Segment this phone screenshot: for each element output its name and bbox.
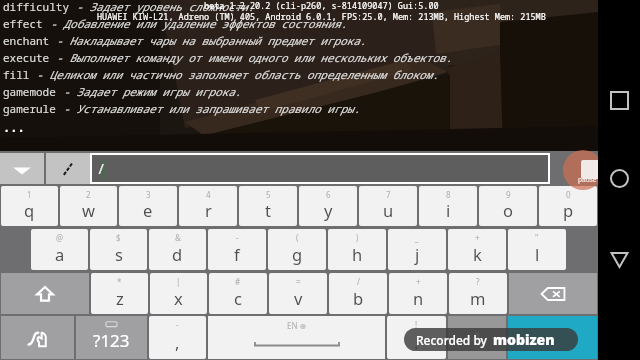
button[interactable]: 3 — [119, 186, 177, 226]
button[interactable]: 1 — [1, 186, 58, 226]
button[interactable]: & — [149, 229, 206, 270]
staticText: gamemode — [3, 84, 63, 99]
button[interactable]: Hide suggestions — [0, 153, 44, 184]
staticText: f — [234, 243, 240, 265]
staticText: k — [473, 243, 482, 265]
button[interactable]: Pause game — [563, 150, 603, 190]
button[interactable]: - — [208, 229, 266, 270]
button[interactable]: 0 — [539, 186, 597, 226]
staticText: v — [294, 287, 303, 309]
button[interactable]: Space — [208, 316, 385, 359]
staticText: 7 — [386, 189, 391, 200]
staticText: / — [357, 276, 360, 287]
staticText: Recorded by — [416, 332, 487, 348]
button[interactable]: Enter — [508, 316, 597, 359]
button[interactable]: + — [448, 229, 506, 270]
button[interactable]: $ — [90, 229, 147, 270]
staticText: @ — [56, 232, 64, 243]
button[interactable]: * — [91, 273, 148, 314]
button[interactable]: Emoji and symbols — [1, 316, 74, 359]
button[interactable]: Back — [602, 242, 636, 276]
staticText: , — [175, 331, 180, 353]
staticText: - Выполняет команду от имени одного или … — [56, 50, 452, 65]
staticText: b — [353, 287, 364, 309]
button[interactable]: Shift — [1, 273, 89, 314]
staticText: effect — [3, 16, 50, 31]
staticText: pause — [578, 175, 597, 184]
staticText: difficulty — [3, 0, 76, 14]
staticText: - — [236, 232, 239, 243]
button[interactable]: 7 — [359, 186, 417, 226]
staticText: 5 — [266, 189, 271, 200]
staticText: j — [415, 243, 420, 265]
button[interactable]: # — [209, 273, 267, 314]
staticText: / — [97, 159, 106, 178]
staticText: beta 1.2.20.2 (cli-p260, s-814109047) Gu… — [204, 0, 439, 12]
staticText: - Накладывает чары на выбранный предмет … — [56, 33, 367, 48]
button[interactable]: Voice input — [448, 316, 506, 359]
staticText: - — [176, 319, 179, 330]
button[interactable]: @ — [31, 229, 88, 270]
staticText: ? — [476, 276, 480, 287]
button[interactable]: 4 — [179, 186, 237, 226]
staticText: z — [116, 287, 124, 309]
staticText: fill — [3, 67, 36, 82]
staticText: $ — [116, 232, 121, 243]
staticText: EN ⊕ — [287, 320, 307, 331]
staticText: - Задает уровень сложности. — [76, 0, 255, 14]
button[interactable]: ! — [387, 316, 446, 359]
staticText: q — [24, 199, 35, 221]
staticText: e — [143, 199, 153, 221]
button[interactable]: _ — [388, 229, 446, 270]
button[interactable]: / — [329, 273, 387, 314]
staticText: c — [234, 287, 242, 309]
button[interactable]: " — [508, 229, 566, 270]
staticText: - Устанавливает или запрашивает правило … — [63, 101, 360, 116]
staticText: o — [503, 199, 513, 221]
staticText: ... — [3, 119, 25, 135]
button[interactable]: ? — [449, 273, 507, 314]
button[interactable]: Recent apps — [602, 83, 636, 117]
staticText: _ — [415, 232, 419, 243]
staticText: u — [383, 199, 394, 221]
button[interactable]: / — [92, 155, 548, 182]
staticText: y — [324, 199, 333, 221]
staticText: h — [352, 243, 363, 265]
staticText: enchant — [3, 33, 56, 48]
button[interactable]: 2 — [60, 186, 117, 226]
staticText: 6 — [326, 189, 331, 200]
staticText: l — [535, 243, 540, 265]
button[interactable]: 8 — [419, 186, 477, 226]
button[interactable]: + — [389, 273, 447, 314]
staticText: + — [416, 276, 421, 287]
button[interactable]: ?123 — [76, 316, 147, 359]
button[interactable]: | — [150, 273, 207, 314]
staticText: gamerule — [3, 101, 63, 116]
button[interactable]: 9 — [479, 186, 537, 226]
button[interactable]: 6 — [299, 186, 357, 226]
button[interactable]: - — [149, 316, 206, 359]
button[interactable]: Handwriting input — [46, 153, 90, 184]
button[interactable]: ) — [328, 229, 386, 270]
button[interactable]: 5 — [239, 186, 297, 226]
button[interactable]: Backspace — [509, 273, 597, 314]
staticText: m — [470, 287, 486, 309]
staticText: p — [563, 199, 574, 221]
staticText: * — [117, 276, 122, 287]
staticText: g — [292, 243, 303, 265]
staticText: - Задает режим игры игрока. — [63, 84, 242, 99]
staticText: & — [175, 232, 181, 243]
staticText: n — [413, 287, 424, 309]
staticText: " — [535, 232, 539, 243]
staticText: a — [55, 243, 65, 265]
button[interactable]: = — [269, 273, 327, 314]
staticText: 3 — [146, 189, 151, 200]
staticText: ?123 — [93, 329, 130, 352]
staticText: 8 — [446, 189, 451, 200]
staticText: d — [172, 243, 183, 265]
staticText: | — [176, 276, 181, 287]
button[interactable]: ( — [268, 229, 326, 270]
staticText: ! — [415, 319, 418, 330]
staticText: + — [475, 232, 480, 243]
button[interactable]: Home — [602, 161, 636, 195]
